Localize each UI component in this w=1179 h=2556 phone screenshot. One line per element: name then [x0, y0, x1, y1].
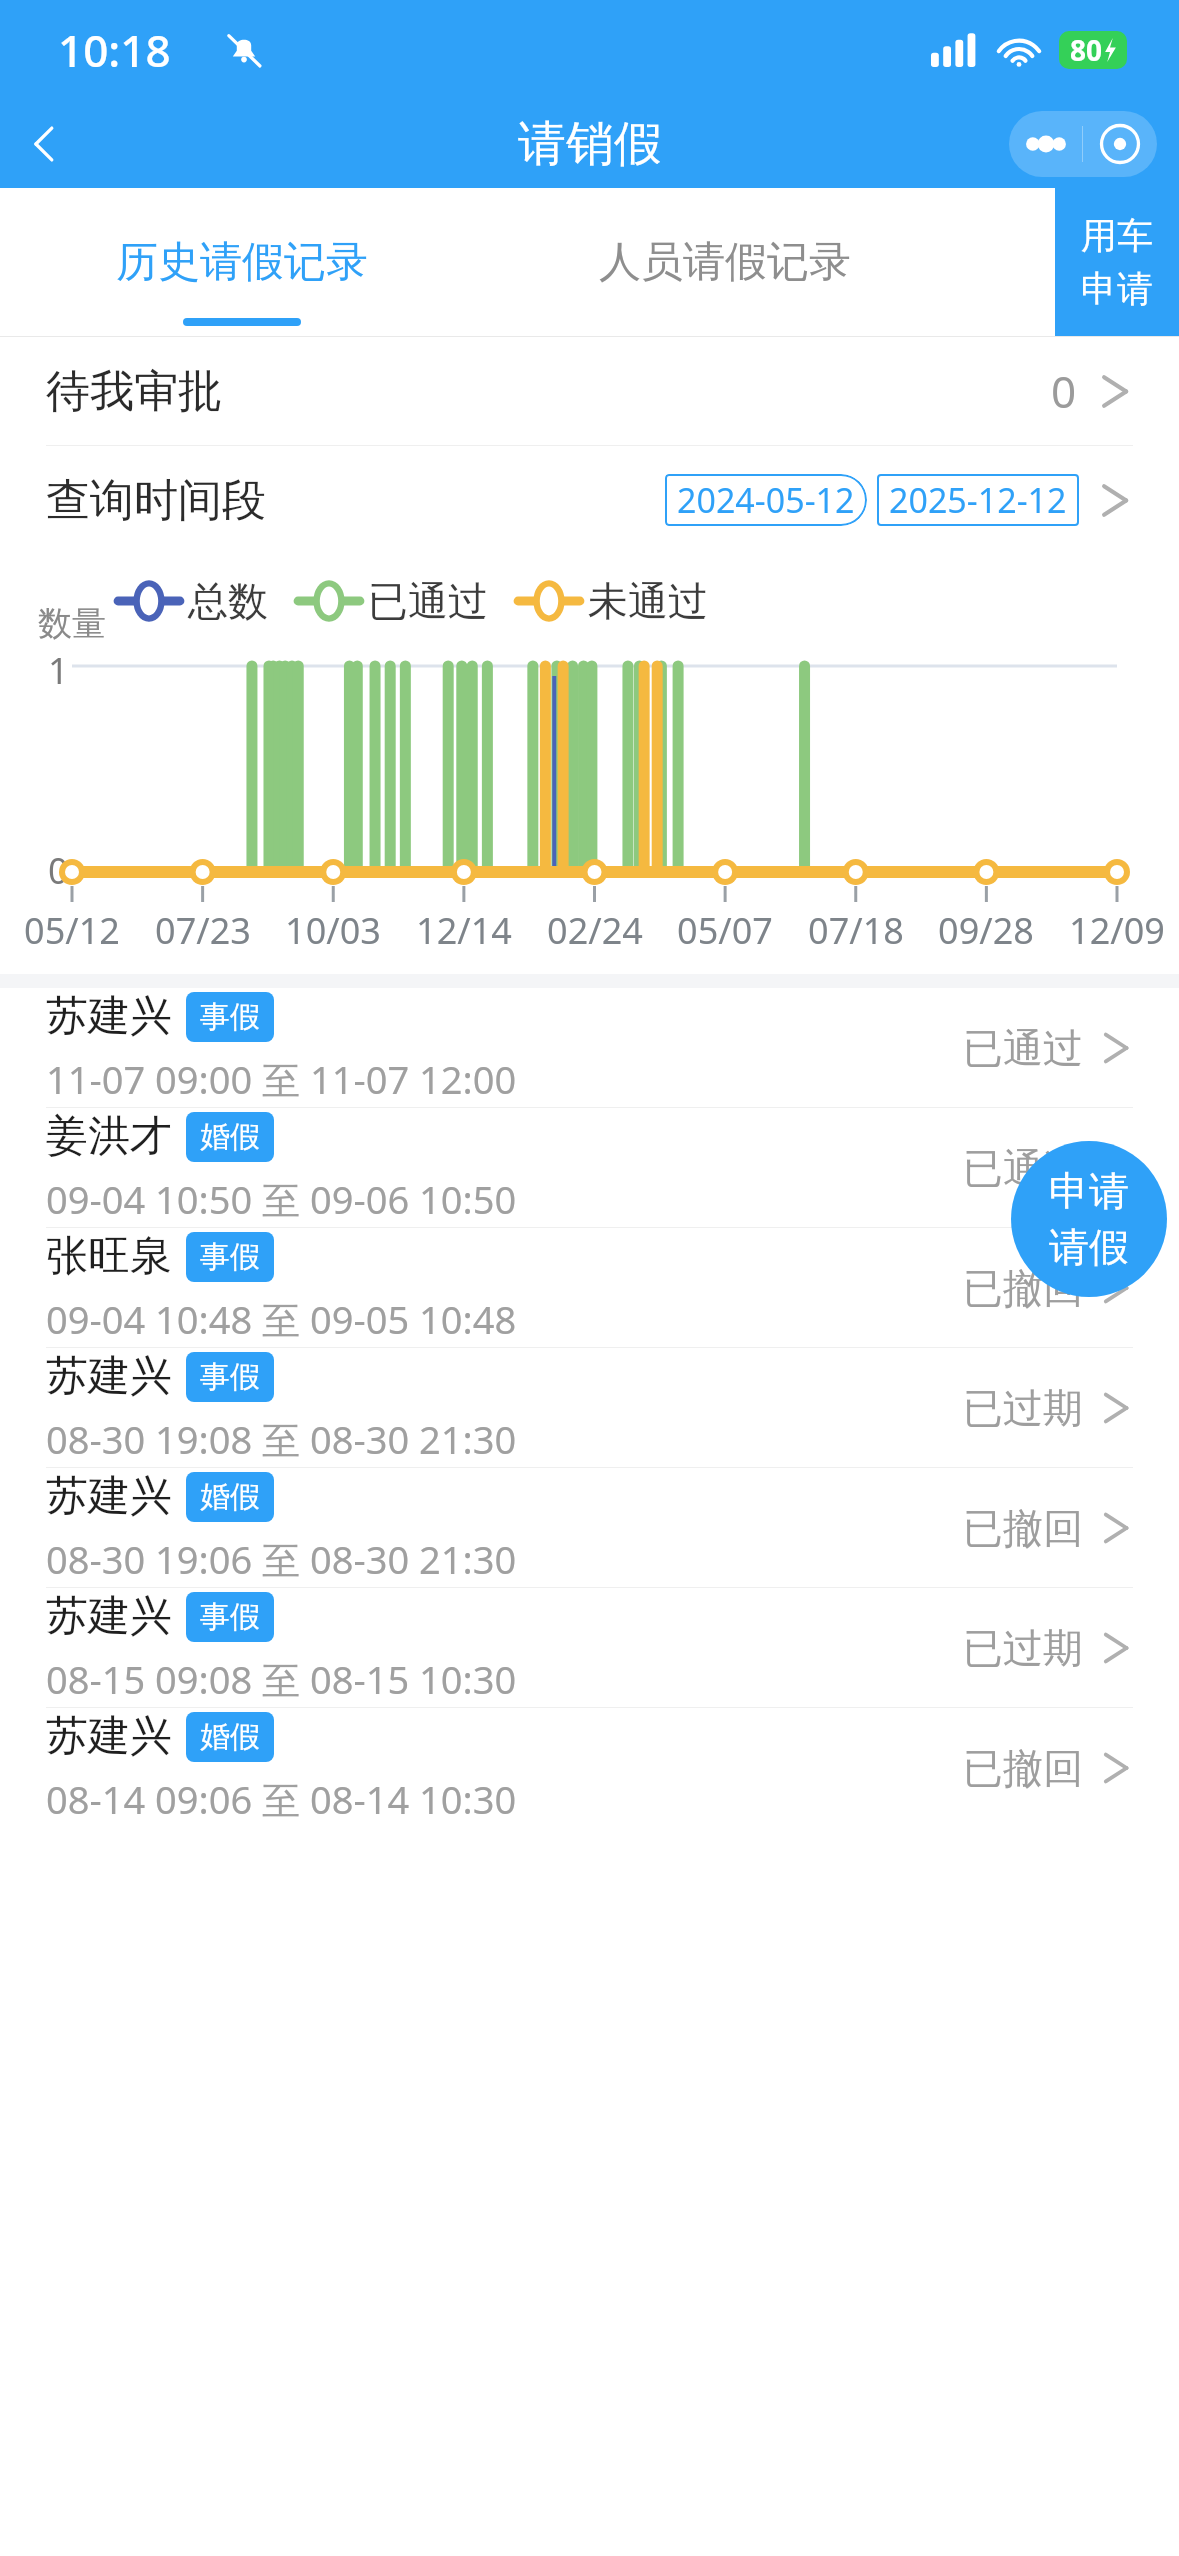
staticText: 历史请假记录 [116, 236, 368, 289]
staticText: 张旺泉 [46, 1230, 172, 1283]
staticText: 苏建兴 [46, 990, 172, 1043]
button[interactable]: 历史请假记录 [0, 188, 483, 336]
staticText: 婚假 [200, 1118, 260, 1156]
staticText: 申请 [1081, 266, 1153, 311]
staticText: 05/07 [663, 906, 787, 955]
staticText: 申请 [1049, 1166, 1129, 1216]
staticText: 已撤回 [963, 1503, 1083, 1553]
staticText: 10/03 [271, 906, 395, 955]
staticText: 09-04 10:48 至 09-05 10:48 [46, 1293, 517, 1345]
staticText: 用车 [1081, 213, 1153, 258]
staticText: 事假 [200, 1238, 260, 1276]
button[interactable]: 查询时间段 [0, 446, 1179, 554]
staticText: 已撤回 [963, 1743, 1083, 1793]
staticText: 1 [48, 646, 69, 695]
button[interactable]: 申请 [1011, 1141, 1167, 1297]
staticText: 婚假 [200, 1478, 260, 1516]
button[interactable]: 用车 [1055, 188, 1179, 336]
staticText: 查询时间段 [46, 473, 266, 528]
staticText: 已撤回 [963, 1263, 1083, 1313]
button[interactable]: 姜洪才 [0, 1108, 1179, 1227]
button[interactable]: 苏建兴 [0, 1348, 1179, 1467]
staticText: 80 [1070, 31, 1103, 69]
staticText: 已通过 [963, 1143, 1083, 1193]
staticText: 苏建兴 [46, 1590, 172, 1643]
staticText: 08-15 09:08 至 08-15 10:30 [46, 1653, 517, 1705]
staticText: 08-30 19:06 至 08-30 21:30 [46, 1533, 517, 1585]
staticText: 12/09 [1055, 906, 1179, 955]
staticText: 苏建兴 [46, 1470, 172, 1523]
staticText: 0 [1051, 361, 1077, 421]
button[interactable]: 待我审批 [0, 337, 1179, 445]
staticText: 事假 [200, 1358, 260, 1396]
staticText: 苏建兴 [46, 1350, 172, 1403]
staticText: 已通过 [368, 576, 488, 626]
button[interactable]: 苏建兴 [0, 1708, 1179, 1827]
staticText: 事假 [200, 1598, 260, 1636]
staticText: 已过期 [963, 1623, 1083, 1673]
button[interactable]: More [1009, 111, 1082, 177]
button[interactable]: 张旺泉 [0, 1228, 1179, 1347]
staticText: 09-04 10:50 至 09-06 10:50 [46, 1173, 517, 1225]
staticText: 0 [48, 846, 69, 895]
staticText: 数量 [38, 602, 106, 645]
button[interactable]: 苏建兴 [0, 1588, 1179, 1707]
button[interactable]: Back [0, 100, 90, 188]
staticText: 2025-12-12 [889, 477, 1067, 523]
button[interactable]: 人员请假记录 [483, 188, 966, 336]
staticText: 总数 [188, 576, 268, 626]
staticText: 事假 [200, 998, 260, 1036]
staticText: 已过期 [963, 1383, 1083, 1433]
staticText: 请销假 [518, 114, 662, 174]
staticText: 已通过 [963, 1023, 1083, 1073]
staticText: 人员请假记录 [599, 236, 851, 289]
staticText: 苏建兴 [46, 1710, 172, 1763]
staticText: 10:18 [58, 20, 171, 80]
button[interactable]: 苏建兴 [0, 988, 1179, 1107]
staticText: 12/14 [402, 906, 526, 955]
staticText: 11-07 09:00 至 11-07 12:00 [46, 1053, 517, 1105]
staticText: 08-30 19:08 至 08-30 21:30 [46, 1413, 517, 1465]
staticText: 婚假 [200, 1718, 260, 1756]
staticText: 2024-05-12 [677, 477, 855, 523]
staticText: 待我审批 [46, 364, 222, 419]
staticText: 02/24 [533, 906, 657, 955]
button[interactable]: 苏建兴 [0, 1468, 1179, 1587]
staticText: 未通过 [588, 576, 708, 626]
staticText: 07/23 [141, 906, 265, 955]
staticText: 05/12 [10, 906, 134, 955]
staticText: 姜洪才 [46, 1110, 172, 1163]
button[interactable]: Close [1083, 111, 1157, 177]
staticText: 请假 [1049, 1222, 1129, 1272]
staticText: 08-14 09:06 至 08-14 10:30 [46, 1773, 517, 1825]
staticText: 09/28 [924, 906, 1048, 955]
staticText: 07/18 [794, 906, 918, 955]
